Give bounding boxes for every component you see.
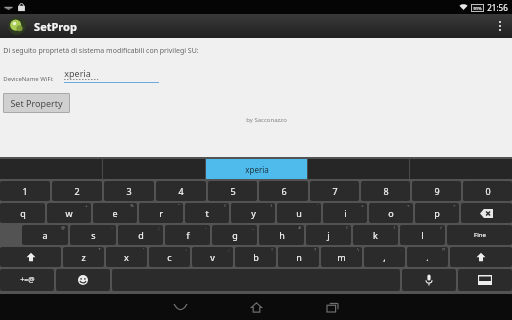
button[interactable] [103,159,206,179]
staticText: r [159,207,163,219]
staticText: 9 [434,185,440,197]
staticText: t [205,207,209,219]
staticText: 91% [473,6,482,11]
button[interactable]: h [259,225,304,245]
staticText: 5 [230,185,236,197]
button[interactable]: Shift [0,247,61,267]
staticText: DeviceName WiFi: [3,75,54,83]
button[interactable]: Delete [461,203,512,223]
staticText: z [81,251,86,263]
button[interactable]: a [22,225,68,245]
button[interactable]: 9 [412,181,461,201]
staticText: s [91,229,96,241]
button[interactable]: 1 [0,181,50,201]
button[interactable]: +=@ [0,269,54,291]
staticText: xperia [64,67,91,79]
button[interactable]: 0 [463,181,512,201]
staticText: xperia [245,164,269,175]
button[interactable]: x [106,247,147,267]
button[interactable]: Hide keyboard [165,294,195,320]
staticText: > [453,203,456,208]
button[interactable]: r [139,203,183,223]
button[interactable]: n [278,247,319,267]
staticText: ' [317,203,318,208]
staticText: : [111,225,113,230]
staticText: . [426,251,429,263]
staticText: ; [158,225,160,230]
button[interactable]: y [231,203,275,223]
button[interactable]: Fine [447,225,512,245]
staticText: d [138,229,144,241]
button[interactable]: t [185,203,229,223]
button[interactable]: 2 [52,181,102,201]
staticText: 0 [485,185,491,197]
button[interactable]: Home [241,294,271,320]
staticText: e [112,207,118,219]
staticText: » [361,203,364,208]
button[interactable]: p [415,203,459,223]
button[interactable]: 7 [310,181,359,201]
button[interactable]: Emoji [56,269,110,291]
staticText: " [178,203,180,208]
button[interactable]: Voice input [402,269,456,291]
staticText: g [232,229,238,241]
staticText: . [400,247,402,252]
button[interactable]: m [321,247,362,267]
button[interactable]: 6 [259,181,308,201]
staticText: SetProp [34,19,77,34]
button[interactable]: g [212,225,257,245]
staticText: v [210,251,215,263]
staticText: Fine [474,231,486,239]
staticText: ( [346,225,348,230]
button[interactable]: 3 [104,181,154,201]
button[interactable]: b [235,247,276,267]
button[interactable]: l [400,225,445,245]
button[interactable]: 8 [361,181,410,201]
staticText: ) [270,203,272,208]
staticText: h [279,229,285,241]
staticText: # [298,225,301,230]
staticText: , [383,251,386,263]
staticText: a [42,229,48,241]
button[interactable]: o [369,203,413,223]
staticText: 8 [383,185,389,197]
button[interactable]: k [353,225,398,245]
button[interactable]: 4 [156,181,206,201]
button[interactable]: w [47,203,91,223]
button[interactable] [0,159,103,179]
button[interactable]: Recent apps [317,294,347,320]
button[interactable]: xperia [206,159,308,179]
button[interactable]: f [165,225,210,245]
button[interactable]: Switch keyboard [458,269,512,291]
staticText: n [296,251,302,263]
button[interactable] [308,159,410,179]
staticText: 6 [281,185,287,197]
staticText: +=@ [20,275,35,285]
button[interactable]: j [306,225,351,245]
staticText: by Sacconazzo [246,116,287,124]
button[interactable]: 5 [208,181,257,201]
button[interactable]: s [70,225,116,245]
button[interactable]: c [149,247,190,267]
staticText: Set Property [10,97,63,109]
button[interactable]: More options [488,14,512,38]
button[interactable]: e [93,203,137,223]
button[interactable]: Set Property [3,93,70,113]
button[interactable]: Shift [450,247,512,267]
button[interactable]: v [192,247,233,267]
button[interactable]: . [407,247,448,267]
button[interactable]: xperia [64,67,159,83]
staticText: ' [143,247,144,252]
staticText: i [344,207,347,219]
staticText: l [421,229,424,241]
staticText: - [205,225,207,230]
button[interactable]: q [0,203,45,223]
button[interactable]: z [63,247,104,267]
button[interactable]: i [323,203,367,223]
staticText: 4 [178,185,184,197]
button[interactable]: u [277,203,321,223]
button[interactable]: , [364,247,405,267]
button[interactable]: d [118,225,163,245]
